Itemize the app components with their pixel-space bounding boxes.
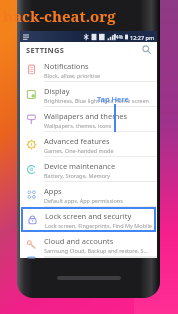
- button[interactable]: Advanced features: [20, 132, 157, 157]
- staticText: Display: [44, 86, 70, 96]
- staticText: Battery, Storage, Memory: [44, 172, 111, 179]
- button[interactable]: Display: [20, 82, 157, 107]
- staticText: Default apps, App permissions: [44, 197, 123, 204]
- staticText: Device maintenance: [44, 161, 116, 171]
- button[interactable]: Cloud and accounts: [20, 232, 157, 257]
- staticText: Cloud and accounts: [44, 236, 114, 246]
- button[interactable]: Device maintenance: [20, 157, 157, 182]
- staticText: Brightness, Blue light filter, Home scre…: [44, 97, 149, 104]
- staticText: 12:27 pm: [130, 34, 155, 41]
- button[interactable]: Wallpapers and themes: [20, 107, 157, 132]
- button[interactable]: Search: [140, 43, 153, 56]
- staticText: Wallpapers and themes: [44, 111, 128, 121]
- button[interactable]: Lock screen and security: [21, 207, 156, 232]
- staticText: Notifications: [44, 61, 89, 71]
- staticText: Wallpapers, themes, icons: [44, 122, 112, 129]
- staticText: Apps: [44, 186, 62, 196]
- staticText: Tap Here: [97, 94, 129, 104]
- staticText: hack-cheat.org: [3, 6, 116, 26]
- staticText: Lock screen and security: [45, 211, 132, 221]
- staticText: SETTINGS: [26, 45, 65, 55]
- button[interactable]: Notifications: [20, 57, 157, 82]
- button[interactable]: Google: [20, 257, 157, 258]
- staticText: Advanced features: [44, 136, 110, 146]
- button[interactable]: Apps: [20, 182, 157, 207]
- staticText: Lock screen, Fingerprints, Find My Mobil…: [45, 222, 152, 229]
- staticText: Games, One-handed mode: [44, 147, 114, 154]
- staticText: Block, allow, prioritise: [44, 72, 101, 79]
- staticText: 74%: [113, 34, 123, 41]
- staticText: Samsung Cloud, Backup and restore, Smart…: [44, 247, 153, 254]
